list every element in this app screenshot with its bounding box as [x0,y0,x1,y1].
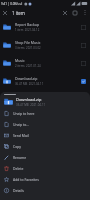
staticText: 9:41 | 0.0K/s ul [1,2,23,6]
staticText: Music [15,58,25,63]
button[interactable]: Send Mail [0,130,90,141]
button[interactable]: Unzip to... [0,119,90,130]
button[interactable]: Unzip to here [0,108,90,119]
button[interactable]: Music [0,54,90,72]
button[interactable]: Report Backup [0,18,90,36]
staticText: Rename [13,155,27,160]
button[interactable]: Select item [81,79,86,84]
staticText: Delete [13,166,24,171]
staticText: 1 item [12,10,25,16]
staticText: 1 item 2021-04-12 [15,28,40,32]
button[interactable]: Shop File Music [0,36,90,54]
button[interactable]: More options [80,8,89,17]
staticText: 36.47 MB 2021-04-11 [16,103,46,107]
staticText: Unzip to here [13,111,35,116]
button[interactable]: Copy [0,141,90,152]
button[interactable]: Close [0,8,10,18]
staticText: Download.zip [15,76,38,81]
staticText: 36.47 MB 2021-04-11 [15,82,44,86]
staticText: Download.zip [16,97,42,102]
staticText: 2 items 2021-01-24 [15,64,41,68]
staticText: Details [13,188,24,193]
staticText: Report Backup [15,22,40,27]
staticText: Shop File Music [15,40,41,45]
button[interactable]: Select item [81,61,86,66]
button[interactable]: Rename [0,152,90,163]
button[interactable]: Delete [0,163,90,174]
button[interactable]: Add to Favorites [0,174,90,185]
button[interactable]: Select item [81,43,86,48]
staticText: Unzip to... [13,122,30,127]
button[interactable]: Cut [60,8,70,18]
staticText: 3 items 2021-03-02 [15,46,41,50]
staticText: Copy [13,144,21,149]
button[interactable]: Details [0,185,90,196]
button[interactable]: Select all [70,8,80,18]
button[interactable]: Download.zip [0,72,90,90]
staticText: Add to Favorites [13,177,39,182]
button[interactable]: Select item [81,25,86,30]
staticText: Send Mail [13,133,29,138]
